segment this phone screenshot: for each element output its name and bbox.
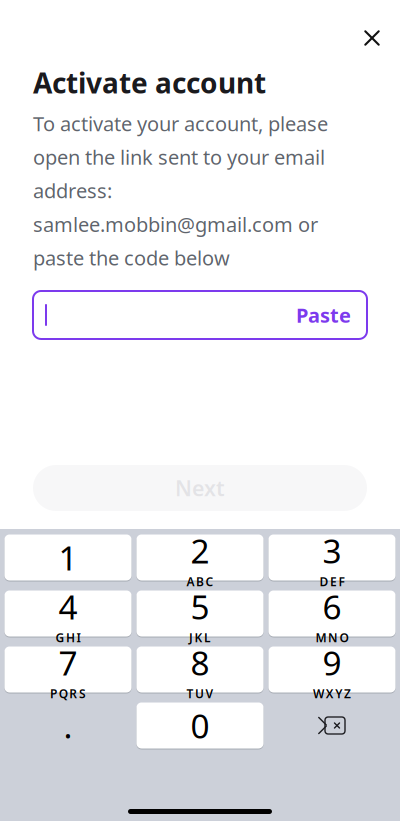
- staticText: Activate account: [33, 64, 266, 101]
- staticText: ABC: [186, 574, 214, 590]
- button[interactable]: Paste: [33, 291, 367, 339]
- staticText: 6: [322, 584, 341, 629]
- button[interactable]: Close: [350, 16, 394, 60]
- staticText: .: [63, 703, 72, 748]
- button[interactable]: 9: [268, 646, 395, 693]
- button[interactable]: 2: [136, 534, 263, 581]
- button[interactable]: 7: [4, 646, 131, 693]
- staticText: Paste: [296, 302, 351, 328]
- button[interactable]: 0: [136, 702, 263, 749]
- button[interactable]: 3: [268, 534, 395, 581]
- staticText: JKL: [189, 630, 211, 646]
- button[interactable]: 5: [136, 590, 263, 637]
- staticText: 0: [190, 703, 209, 748]
- staticText: PQRS: [50, 686, 86, 702]
- staticText: 3: [322, 528, 341, 573]
- staticText: GHI: [55, 630, 81, 646]
- staticText: DEF: [319, 574, 345, 590]
- staticText: TUV: [186, 686, 214, 702]
- staticText: Next: [175, 474, 225, 502]
- staticText: MNO: [315, 630, 349, 646]
- button[interactable]: 6: [268, 590, 395, 637]
- staticText: 8: [190, 640, 209, 685]
- button[interactable]: 4: [4, 590, 131, 637]
- button[interactable]: Delete: [268, 702, 395, 749]
- button[interactable]: .: [4, 702, 131, 749]
- staticText: 4: [58, 584, 77, 629]
- staticText: 5: [190, 584, 209, 629]
- staticText: 2: [190, 528, 209, 573]
- staticText: To activate your account, please open th…: [33, 110, 328, 271]
- button[interactable]: 1: [4, 534, 131, 581]
- staticText: 1: [58, 535, 77, 580]
- staticText: 7: [58, 640, 77, 685]
- staticText: WXYZ: [313, 686, 351, 702]
- staticText: 9: [322, 640, 341, 685]
- button[interactable]: 8: [136, 646, 263, 693]
